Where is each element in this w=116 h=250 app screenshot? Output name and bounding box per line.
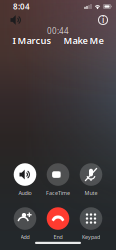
button[interactable]: End: [41, 208, 74, 242]
staticText: Make Me: [63, 34, 103, 47]
staticText: i: [102, 15, 104, 25]
button[interactable]: Audio route: [8, 13, 22, 27]
button[interactable]: Mute: [74, 164, 107, 198]
button[interactable]: FaceTime: [41, 164, 74, 198]
staticText: Audio: [18, 189, 31, 196]
staticText: I Marcus: [12, 34, 51, 47]
staticText: End: [53, 233, 62, 240]
staticText: 00:44: [47, 26, 69, 36]
staticText: FaceTime: [46, 189, 70, 196]
button[interactable]: Audio: [8, 164, 41, 198]
staticText: 8:04: [13, 1, 30, 12]
button[interactable]: Keypad: [74, 208, 107, 242]
button[interactable]: Call info: [98, 15, 108, 25]
staticText: Add: [20, 233, 29, 240]
staticText: Keypad: [82, 233, 100, 240]
button[interactable]: Add: [8, 208, 41, 242]
staticText: Mute: [84, 189, 97, 196]
